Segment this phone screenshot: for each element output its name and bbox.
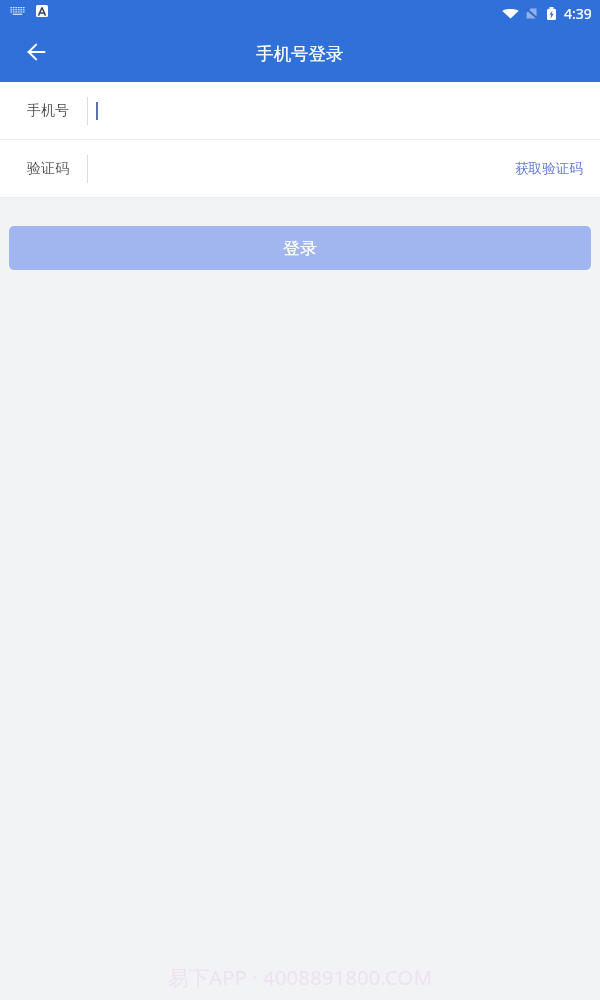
staticText: 手机号 — [27, 102, 69, 120]
staticText: 获取验证码 — [515, 160, 583, 177]
button[interactable]: 登录 — [9, 226, 591, 270]
staticText: 易下APP · 4008891800.COM — [0, 963, 600, 991]
button[interactable]: Back — [0, 26, 60, 82]
staticText: 登录 — [283, 238, 317, 259]
button[interactable]: 手机号 — [0, 82, 600, 139]
staticText: 4:39 — [564, 4, 592, 23]
button[interactable]: 验证码 — [0, 140, 600, 197]
staticText: 手机号登录 — [256, 43, 344, 65]
staticText: 验证码 — [27, 160, 69, 178]
